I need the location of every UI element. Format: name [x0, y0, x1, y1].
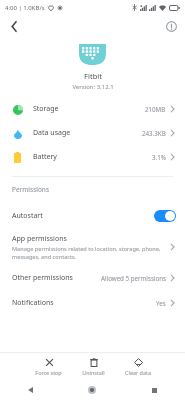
staticText: Uninstall: [82, 369, 105, 376]
button[interactable]: Home: [61, 380, 123, 400]
staticText: Storage: [33, 104, 59, 114]
staticText: Autostart: [12, 211, 43, 221]
button[interactable]: Recent apps: [123, 380, 185, 400]
button[interactable]: Autostart: [0, 203, 185, 229]
button[interactable]: App info: [161, 16, 181, 36]
staticText: 4:00 | 1.0KB/s: [5, 4, 45, 12]
staticText: Yes: [156, 299, 166, 307]
button[interactable]: Clear data: [122, 355, 154, 378]
staticText: Permissions: [12, 185, 50, 194]
staticText: Data usage: [33, 128, 71, 138]
button[interactable]: Other permissions: [0, 265, 185, 290]
staticText: App permissions: [12, 234, 67, 244]
staticText: Version: 3.12.1: [72, 83, 114, 91]
button[interactable]: Back: [4, 16, 24, 36]
staticText: Notifications: [12, 298, 54, 308]
button[interactable]: Notifications: [0, 290, 185, 315]
staticText: Manage permissions related to location, …: [12, 245, 161, 260]
staticText: Other permissions: [12, 273, 73, 283]
staticText: Battery: [33, 152, 57, 162]
staticText: Allowed 5 permissions: [101, 274, 166, 282]
button[interactable]: App permissions: [0, 229, 185, 265]
staticText: 3.1%: [152, 153, 166, 161]
button[interactable]: Uninstall: [79, 355, 108, 378]
staticText: Clear data: [125, 369, 151, 376]
button[interactable]: Storage: [0, 97, 185, 121]
staticText: Force stop: [35, 369, 62, 376]
staticText: Fitbit: [84, 71, 102, 81]
button[interactable]: Force stop: [32, 355, 65, 378]
staticText: 210MB: [145, 105, 166, 113]
staticText: 243.3KB: [142, 129, 166, 137]
button[interactable]: Back: [0, 380, 61, 400]
button[interactable]: Data usage: [0, 121, 185, 145]
button[interactable]: Battery: [0, 145, 185, 169]
